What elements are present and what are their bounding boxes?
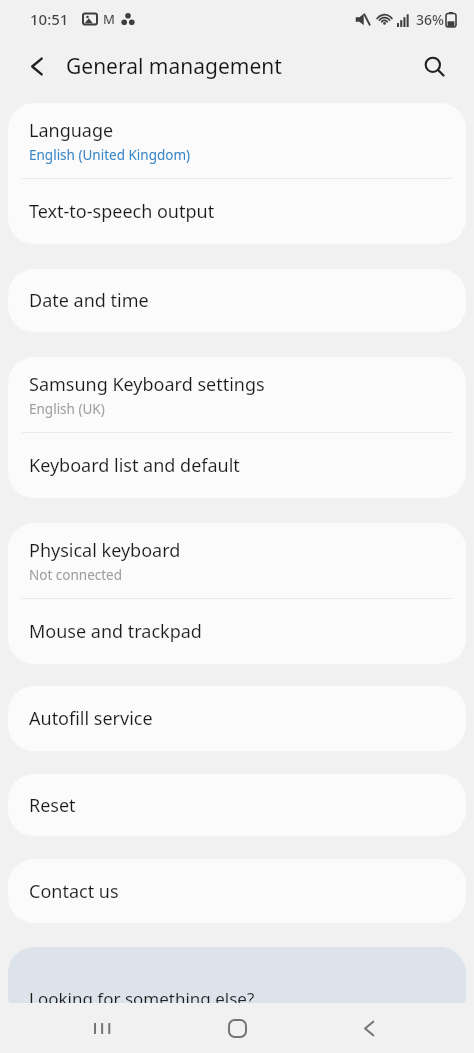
- button[interactable]: Keyboard list and default: [8, 433, 466, 498]
- button[interactable]: Autofill service: [8, 686, 466, 751]
- staticText: Autofill service: [29, 706, 153, 731]
- staticText: Date and time: [29, 288, 149, 313]
- staticText: Reset: [29, 793, 76, 818]
- button[interactable]: Looking for something else?: [8, 947, 466, 1022]
- staticText: Language: [29, 118, 114, 143]
- staticText: 36%: [416, 10, 444, 29]
- button[interactable]: Search: [412, 44, 456, 88]
- button[interactable]: Samsung Keyboard settings: [8, 357, 466, 432]
- button[interactable]: Home: [214, 1005, 260, 1051]
- button[interactable]: Date and time: [8, 269, 466, 332]
- staticText: Not connected: [29, 566, 123, 584]
- button[interactable]: Back: [16, 45, 58, 87]
- button[interactable]: Language: [8, 103, 466, 178]
- button[interactable]: Recents: [80, 1005, 126, 1051]
- staticText: English (United Kingdom): [29, 146, 191, 164]
- staticText: Keyboard list and default: [29, 453, 240, 478]
- staticText: 10:51: [30, 9, 69, 29]
- button[interactable]: Physical keyboard: [8, 523, 466, 598]
- staticText: M: [103, 10, 115, 28]
- button[interactable]: Contact us: [8, 859, 466, 923]
- staticText: Contact us: [29, 879, 119, 904]
- staticText: Physical keyboard: [29, 538, 181, 563]
- staticText: Samsung Keyboard settings: [29, 372, 265, 397]
- staticText: English (UK): [29, 400, 105, 418]
- button[interactable]: Back: [346, 1005, 392, 1051]
- button[interactable]: Mouse and trackpad: [8, 599, 466, 664]
- staticText: Text-to-speech output: [29, 199, 215, 224]
- button[interactable]: Text-to-speech output: [8, 179, 466, 244]
- staticText: Looking for something else?: [29, 987, 255, 1010]
- button[interactable]: Reset: [8, 774, 466, 836]
- staticText: General management: [66, 52, 282, 81]
- staticText: Mouse and trackpad: [29, 619, 202, 644]
